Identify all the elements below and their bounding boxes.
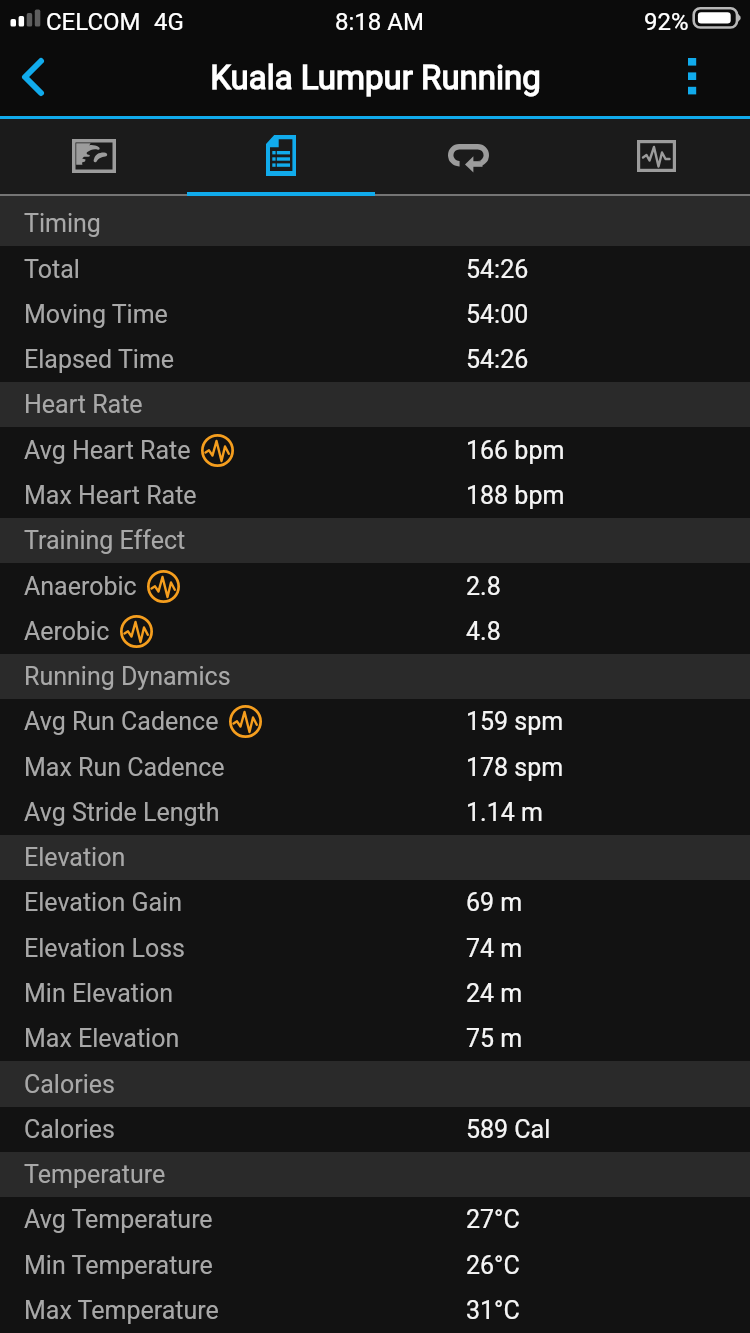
button[interactable]: Elevation xyxy=(0,835,750,880)
button[interactable]: Avg Stride Length xyxy=(0,790,750,835)
button[interactable]: Laps xyxy=(374,119,562,196)
button[interactable]: Avg Temperature xyxy=(0,1197,750,1242)
staticText: Avg Heart Rate xyxy=(24,436,191,465)
button[interactable]: Heart Rate xyxy=(0,382,750,427)
button[interactable]: Max Heart Rate xyxy=(0,473,750,518)
staticText: 27°C xyxy=(466,1205,520,1234)
staticText: 188 bpm xyxy=(466,481,565,510)
button[interactable]: More options xyxy=(634,44,750,116)
staticText: 74 m xyxy=(466,934,523,963)
staticText: 54:26 xyxy=(466,345,529,374)
staticText: 54:26 xyxy=(466,255,529,284)
staticText: 178 spm xyxy=(466,753,564,782)
button[interactable]: Max Elevation xyxy=(0,1016,750,1061)
staticText: Avg Temperature xyxy=(24,1205,213,1234)
button[interactable]: Map xyxy=(0,119,187,196)
staticText: 4G xyxy=(154,8,184,36)
staticText: 166 bpm xyxy=(466,436,565,465)
staticText: Max Heart Rate xyxy=(24,481,197,510)
button[interactable]: Calories xyxy=(0,1061,750,1107)
staticText: Min Temperature xyxy=(24,1251,213,1280)
button[interactable]: Min Temperature xyxy=(0,1242,750,1288)
staticText: 4.8 xyxy=(466,617,501,646)
staticText: Aerobic xyxy=(24,617,110,646)
staticText: 2.8 xyxy=(466,572,501,601)
staticText: Elevation Loss xyxy=(24,934,185,963)
button[interactable]: Elevation Gain xyxy=(0,880,750,925)
button[interactable]: Timing xyxy=(0,196,750,246)
staticText: Kuala Lumpur Running xyxy=(210,58,541,97)
staticText: Anaerobic xyxy=(24,572,137,601)
staticText: Temperature xyxy=(24,1160,166,1189)
staticText: 31°C xyxy=(466,1296,520,1325)
staticText: Avg Stride Length xyxy=(24,798,220,827)
staticText: Max Elevation xyxy=(24,1024,180,1053)
staticText: Moving Time xyxy=(24,300,168,329)
staticText: Timing xyxy=(24,209,101,238)
staticText: Elevation xyxy=(24,843,126,872)
staticText: CELCOM xyxy=(46,8,141,36)
staticText: Calories xyxy=(24,1115,115,1144)
button[interactable]: Elevation Loss xyxy=(0,925,750,971)
button[interactable]: Total xyxy=(0,246,750,292)
button[interactable]: Avg Heart Rate xyxy=(0,427,750,473)
button[interactable]: Min Elevation xyxy=(0,971,750,1016)
staticText: 26°C xyxy=(466,1251,520,1280)
staticText: Training Effect xyxy=(24,526,186,555)
button[interactable]: Charts xyxy=(562,119,750,196)
staticText: 8:18 AM xyxy=(335,8,424,36)
staticText: 54:00 xyxy=(466,300,529,329)
staticText: 92% xyxy=(644,8,689,36)
staticText: Calories xyxy=(24,1070,115,1099)
staticText: Min Elevation xyxy=(24,979,174,1008)
staticText: Avg Run Cadence xyxy=(24,707,219,736)
button[interactable]: Temperature xyxy=(0,1152,750,1197)
button[interactable]: Aerobic xyxy=(0,609,750,654)
button[interactable]: Details xyxy=(187,119,374,196)
button[interactable]: Back xyxy=(0,44,68,116)
staticText: 589 Cal xyxy=(466,1115,551,1144)
staticText: 24 m xyxy=(466,979,523,1008)
button[interactable]: Avg Run Cadence xyxy=(0,699,750,744)
staticText: Max Temperature xyxy=(24,1296,219,1325)
staticText: Elevation Gain xyxy=(24,888,182,917)
staticText: Max Run Cadence xyxy=(24,753,225,782)
staticText: Running Dynamics xyxy=(24,662,231,691)
staticText: 69 m xyxy=(466,888,523,917)
button[interactable]: Max Temperature xyxy=(0,1288,750,1333)
button[interactable]: Training Effect xyxy=(0,518,750,563)
button[interactable]: Running Dynamics xyxy=(0,654,750,699)
staticText: 75 m xyxy=(466,1024,523,1053)
staticText: 1.14 m xyxy=(466,798,543,827)
button[interactable]: Elapsed Time xyxy=(0,337,750,382)
staticText: Total xyxy=(24,255,80,284)
staticText: Elapsed Time xyxy=(24,345,175,374)
button[interactable]: Max Run Cadence xyxy=(0,744,750,790)
button[interactable]: Moving Time xyxy=(0,292,750,337)
button[interactable]: Calories xyxy=(0,1107,750,1152)
staticText: Heart Rate xyxy=(24,390,143,419)
button[interactable]: Anaerobic xyxy=(0,563,750,609)
staticText: 159 spm xyxy=(466,707,564,736)
